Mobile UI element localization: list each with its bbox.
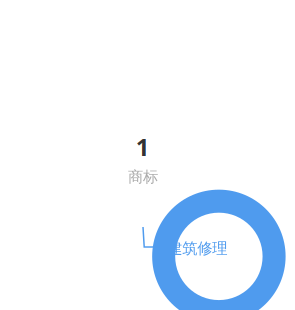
staticText: 1 <box>136 130 150 163</box>
staticText: 商标 <box>128 167 158 187</box>
button[interactable]: 建筑修理 slice, 1 item, 100 percent <box>76 95 209 228</box>
staticText: 建筑修理 <box>167 239 227 258</box>
button[interactable]: 建筑修理 <box>167 239 227 258</box>
